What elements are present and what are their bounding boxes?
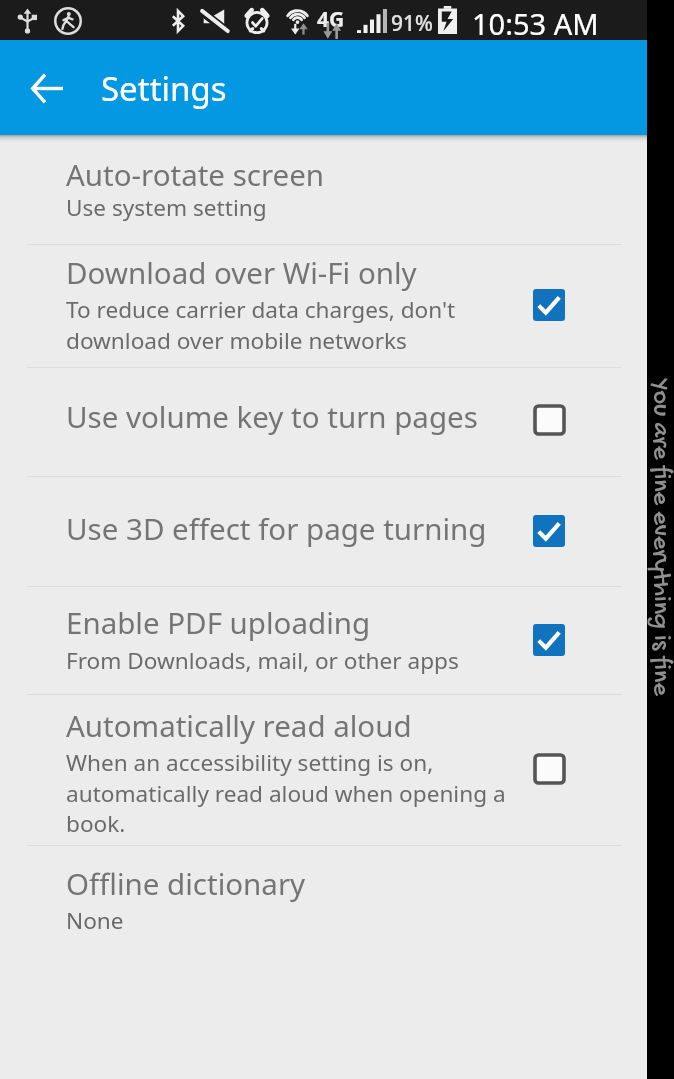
staticText: From Downloads, mail, or other apps — [66, 645, 459, 676]
staticText: Use 3D effect for page turning — [66, 508, 487, 548]
staticText: To reduce carrier data charges, don't do… — [66, 294, 456, 355]
button[interactable] — [0, 244, 647, 367]
staticText: When an accessibility setting is on, aut… — [66, 747, 506, 838]
staticText: 10:53 AM — [472, 4, 599, 43]
staticText: Automatically read aloud — [66, 705, 412, 745]
button[interactable] — [0, 586, 647, 694]
button[interactable] — [0, 476, 647, 586]
staticText: Auto-rotate screen — [66, 154, 325, 194]
button[interactable] — [0, 367, 647, 476]
button[interactable]: Unchecked — [525, 396, 573, 444]
staticText: 91% — [391, 9, 433, 38]
button[interactable]: Checked — [525, 616, 573, 664]
button[interactable] — [0, 135, 647, 244]
staticText: Settings — [101, 66, 227, 111]
button[interactable]: Checked — [525, 281, 573, 329]
staticText: Offline dictionary — [66, 863, 306, 903]
staticText: You are fine everything is fine — [647, 378, 674, 696]
staticText: Use system setting — [66, 192, 267, 223]
staticText: 4G — [317, 5, 345, 34]
staticText: Download over Wi-Fi only — [66, 252, 417, 292]
button[interactable] — [0, 694, 647, 845]
staticText: Use volume key to turn pages — [66, 396, 478, 436]
button[interactable] — [0, 845, 647, 1079]
button[interactable]: Back — [24, 66, 70, 112]
button[interactable]: Unchecked — [525, 745, 573, 793]
staticText: Enable PDF uploading — [66, 602, 371, 642]
staticText: None — [66, 905, 124, 936]
button[interactable]: Checked — [525, 507, 573, 555]
